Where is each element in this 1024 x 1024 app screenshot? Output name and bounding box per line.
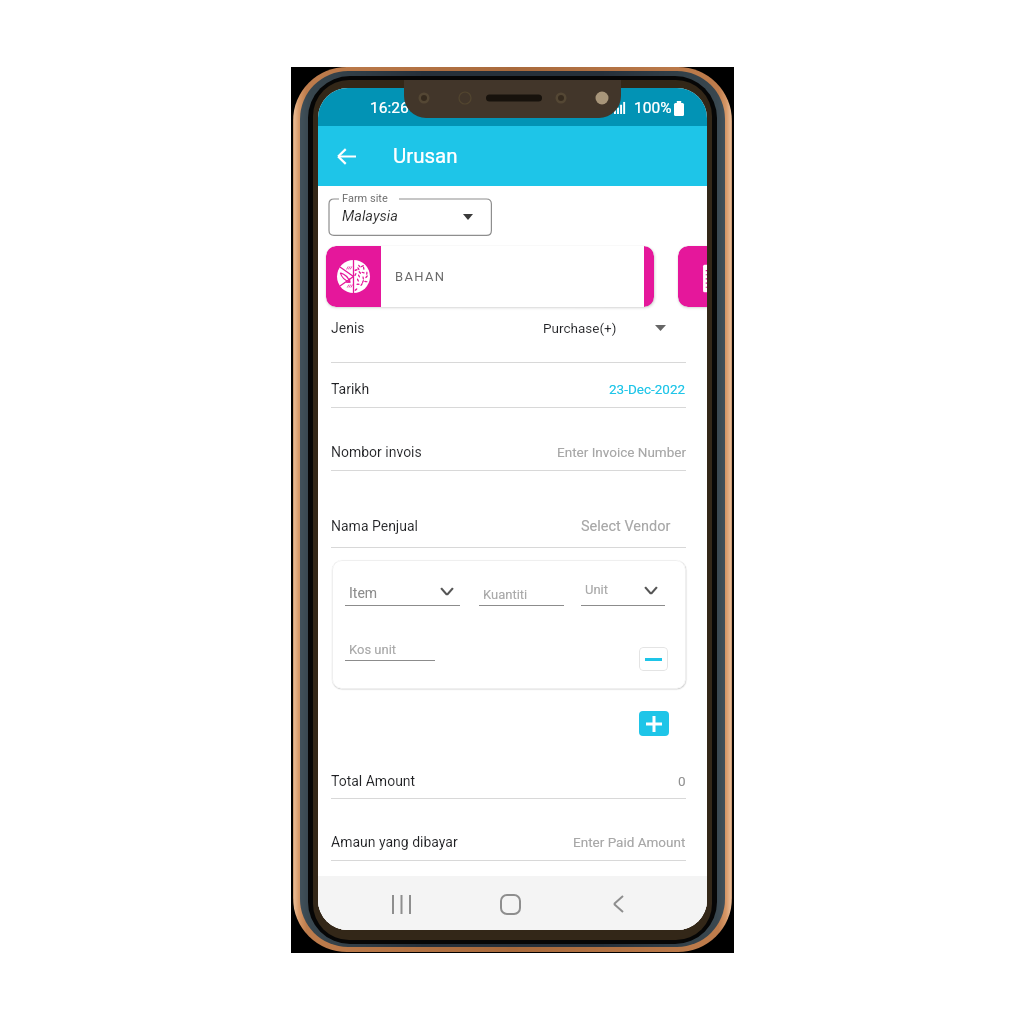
button[interactable]: Item	[332, 560, 686, 689]
button[interactable]: Total Amount	[331, 770, 686, 792]
button[interactable]: Farm site	[329, 190, 492, 236]
button[interactable]: Tarikh	[331, 378, 686, 400]
staticText: 16:26	[370, 99, 409, 117]
staticText: Kos unit	[349, 642, 397, 657]
staticText: Jenis	[331, 320, 365, 336]
staticText: Farm site	[342, 192, 388, 205]
staticText: Unit	[585, 582, 609, 597]
button[interactable]: Jenis	[331, 317, 686, 339]
staticText: Enter Paid Amount	[573, 834, 686, 850]
button[interactable]: Recent apps	[380, 883, 422, 925]
staticText: 23-Dec-2022	[609, 381, 686, 397]
button[interactable]: Back	[325, 135, 367, 177]
button[interactable]: Amaun yang dibayar	[331, 831, 686, 853]
staticText: Enter Invoice Number	[557, 444, 686, 460]
staticText: Amaun yang dibayar	[331, 834, 458, 850]
button[interactable]: Remove item	[639, 647, 668, 671]
staticText: Select Vendor	[581, 518, 671, 535]
staticText: Tarikh	[331, 381, 370, 397]
button[interactable]: Nama Penjual	[331, 515, 686, 537]
staticText: 100%	[634, 99, 672, 117]
staticText: Nama Penjual	[331, 518, 418, 534]
staticText: Kuantiti	[483, 587, 528, 602]
button[interactable]: BAHAN	[326, 246, 654, 307]
button[interactable]: Home	[489, 883, 531, 925]
button[interactable]: Nombor invois	[331, 441, 686, 463]
button[interactable]: Back	[597, 883, 639, 925]
staticText: Total Amount	[331, 773, 416, 789]
staticText: Item	[349, 585, 378, 601]
button[interactable]	[678, 246, 707, 307]
staticText: BAHAN	[395, 269, 446, 284]
staticText: Nombor invois	[331, 444, 422, 460]
staticText: 0	[678, 773, 686, 789]
staticText: Purchase(+)	[543, 320, 617, 336]
button[interactable]: Add item	[639, 711, 669, 736]
staticText: Malaysia	[342, 208, 398, 225]
staticText: Urusan	[393, 144, 458, 168]
